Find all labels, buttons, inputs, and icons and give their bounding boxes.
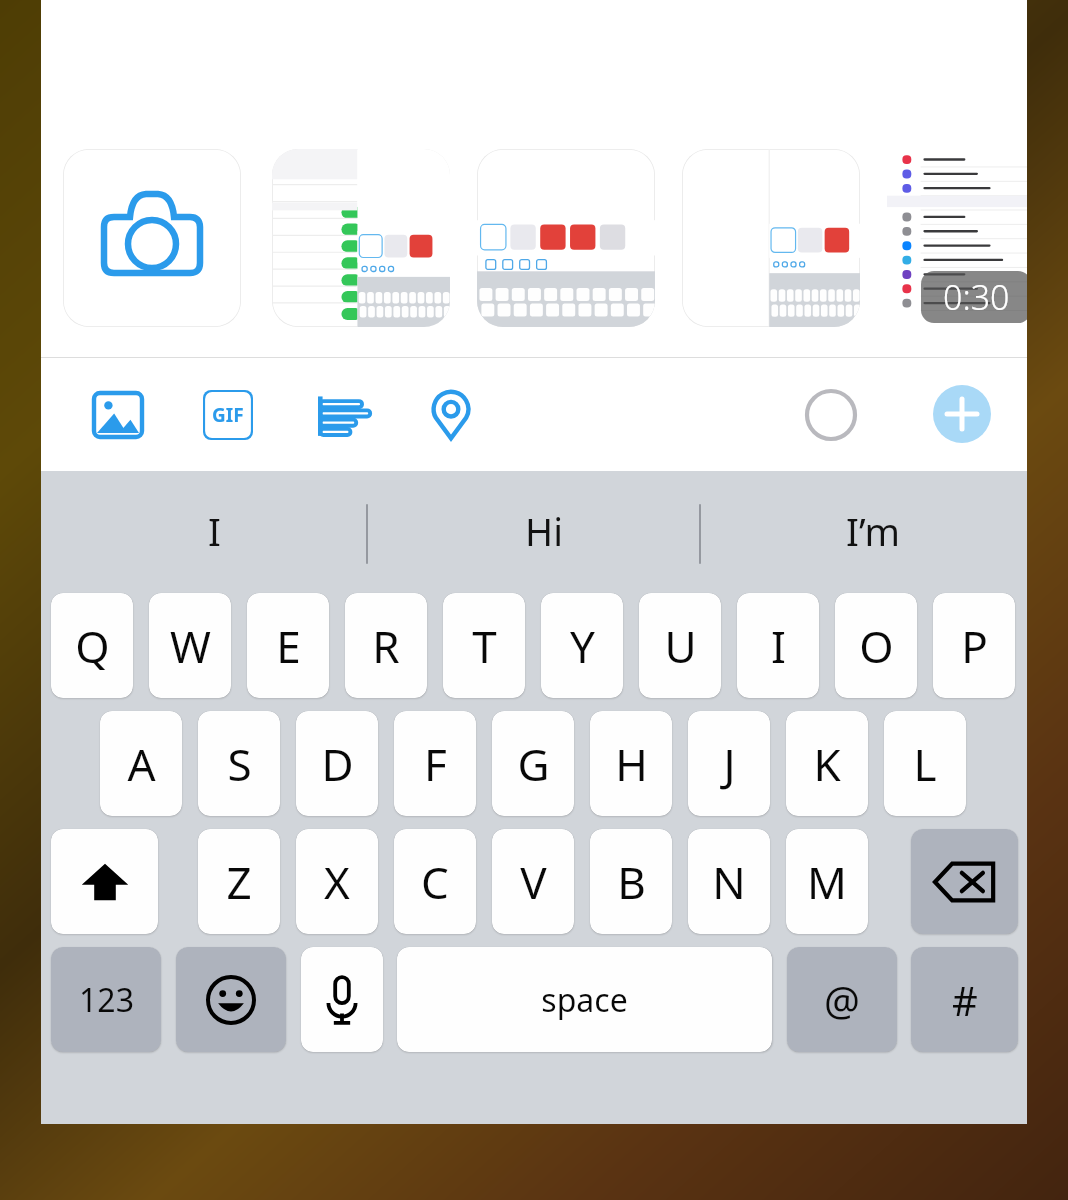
- button[interactable]: I’m: [708, 471, 1037, 590]
- staticText: R: [372, 616, 400, 676]
- button[interactable]: U: [639, 593, 721, 698]
- staticText: F: [424, 734, 447, 794]
- button[interactable]: N: [688, 829, 770, 934]
- button[interactable]: Q: [51, 593, 133, 698]
- button[interactable]: E: [247, 593, 329, 698]
- staticText: 123: [79, 978, 134, 1022]
- button[interactable]: [272, 149, 450, 327]
- button[interactable]: L: [884, 711, 966, 816]
- button[interactable]: I: [50, 471, 379, 590]
- staticText: M: [807, 852, 847, 912]
- button[interactable]: X: [296, 829, 378, 934]
- staticText: #: [952, 973, 978, 1027]
- staticText: E: [276, 616, 301, 676]
- staticText: T: [472, 616, 497, 676]
- button[interactable]: I: [737, 593, 819, 698]
- button[interactable]: Music: [311, 386, 369, 444]
- button[interactable]: P: [933, 593, 1015, 698]
- other: Emoji: [205, 974, 257, 1026]
- button[interactable]: key: [51, 829, 158, 934]
- staticText: K: [813, 734, 841, 794]
- button[interactable]: Take photo: [63, 149, 241, 327]
- staticText: O: [859, 616, 894, 676]
- staticText: 0:30: [943, 274, 1010, 320]
- staticText: L: [913, 734, 937, 794]
- staticText: X: [324, 852, 350, 912]
- staticText: Hi: [525, 505, 563, 557]
- button[interactable]: Add: [933, 385, 991, 443]
- button[interactable]: G: [492, 711, 574, 816]
- staticText: G: [517, 734, 550, 794]
- button[interactable]: R: [345, 593, 427, 698]
- button[interactable]: @: [787, 947, 897, 1052]
- button[interactable]: GIF: [199, 386, 257, 444]
- button[interactable]: O: [835, 593, 917, 698]
- staticText: Y: [570, 616, 595, 676]
- button[interactable]: T: [443, 593, 525, 698]
- staticText: W: [170, 616, 211, 676]
- staticText: N: [712, 852, 746, 912]
- button[interactable]: #: [911, 947, 1018, 1052]
- button[interactable]: Location: [422, 386, 480, 444]
- button[interactable]: Y: [541, 593, 623, 698]
- button[interactable]: space: [397, 947, 772, 1052]
- staticText: S: [227, 734, 252, 794]
- button[interactable]: 0:30: [887, 149, 1027, 327]
- button[interactable]: H: [590, 711, 672, 816]
- button[interactable]: F: [394, 711, 476, 816]
- staticText: I: [771, 616, 786, 676]
- staticText: space: [541, 978, 628, 1022]
- button[interactable]: key: [176, 947, 286, 1052]
- button[interactable]: M: [786, 829, 868, 934]
- staticText: @: [824, 973, 860, 1027]
- staticText: B: [617, 852, 646, 912]
- button[interactable]: [682, 149, 860, 327]
- button[interactable]: J: [688, 711, 770, 816]
- button[interactable]: C: [394, 829, 476, 934]
- other: Shift: [78, 855, 132, 909]
- staticText: U: [664, 616, 697, 676]
- staticText: V: [520, 852, 547, 912]
- button[interactable]: [477, 149, 655, 327]
- button[interactable]: B: [590, 829, 672, 934]
- staticText: D: [321, 734, 354, 794]
- button[interactable]: 123: [51, 947, 161, 1052]
- button[interactable]: S: [198, 711, 280, 816]
- staticText: Z: [226, 852, 252, 912]
- staticText: GIF: [212, 402, 244, 428]
- button[interactable]: key: [301, 947, 383, 1052]
- staticText: J: [723, 734, 736, 794]
- button[interactable]: key: [911, 829, 1018, 934]
- button[interactable]: Apps: [804, 388, 858, 442]
- button[interactable]: Z: [198, 829, 280, 934]
- button[interactable]: A: [100, 711, 182, 816]
- staticText: I’m: [846, 505, 900, 557]
- staticText: C: [421, 852, 449, 912]
- other: Dictate: [325, 974, 359, 1026]
- staticText: Q: [75, 616, 110, 676]
- staticText: A: [127, 734, 156, 794]
- button[interactable]: D: [296, 711, 378, 816]
- staticText: I: [208, 505, 221, 557]
- button[interactable]: K: [786, 711, 868, 816]
- button[interactable]: V: [492, 829, 574, 934]
- staticText: H: [615, 734, 648, 794]
- other: Backspace: [933, 859, 997, 905]
- button[interactable]: Photos: [89, 386, 147, 444]
- staticText: P: [961, 616, 988, 676]
- button[interactable]: Hi: [379, 471, 708, 590]
- button[interactable]: W: [149, 593, 231, 698]
